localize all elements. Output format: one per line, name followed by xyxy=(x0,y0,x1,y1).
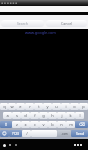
staticText: y xyxy=(46,104,49,109)
staticText: j xyxy=(61,113,63,118)
staticText: w xyxy=(10,104,14,109)
staticText: / xyxy=(26,131,28,136)
staticText: k xyxy=(69,113,72,118)
staticText: l xyxy=(79,113,81,118)
button[interactable] xyxy=(31,130,57,137)
button[interactable]: u xyxy=(52,103,61,110)
button[interactable]: / xyxy=(22,130,31,137)
button[interactable]: y xyxy=(43,103,52,110)
staticText: ?123 xyxy=(12,132,19,136)
staticText: p xyxy=(82,104,85,109)
staticText: v xyxy=(42,122,45,127)
staticText: .com xyxy=(61,132,68,136)
button[interactable]: ⌫ xyxy=(75,121,88,128)
button[interactable]: o xyxy=(70,103,79,110)
button[interactable]: l xyxy=(75,112,84,119)
button[interactable]: c xyxy=(30,121,39,128)
staticText: Cancel xyxy=(61,21,73,26)
staticText: f xyxy=(34,113,36,118)
staticText: u xyxy=(55,104,58,109)
staticText: b xyxy=(51,122,54,127)
staticText: r xyxy=(29,104,31,109)
button[interactable]: z xyxy=(12,121,21,128)
staticText: e xyxy=(19,104,22,109)
staticText: a xyxy=(6,113,9,118)
button[interactable]: ⇧ xyxy=(0,121,12,128)
button[interactable]: g xyxy=(39,112,48,119)
staticText: d xyxy=(24,113,27,118)
button[interactable]: s xyxy=(12,112,21,119)
staticText: c xyxy=(34,122,36,127)
button[interactable]: .com xyxy=(57,130,71,137)
staticText: ▪ ▪ ▪ ▪ ▪ ▪ xyxy=(1,1,18,5)
button[interactable]: k xyxy=(66,112,75,119)
button[interactable]: n xyxy=(57,121,66,128)
staticText: Send xyxy=(76,131,84,136)
button[interactable]: r xyxy=(25,103,34,110)
button[interactable]: j xyxy=(57,112,66,119)
staticText: ☺ xyxy=(2,131,7,136)
staticText: ⌫ xyxy=(79,122,85,127)
button[interactable]: h xyxy=(48,112,57,119)
staticText: g xyxy=(42,113,45,118)
staticText: www.google.com xyxy=(25,30,56,35)
button[interactable]: t xyxy=(34,103,43,110)
button[interactable]: Send xyxy=(71,130,88,137)
staticText: Search xyxy=(17,21,28,26)
staticText: o xyxy=(73,104,76,109)
staticText: h xyxy=(51,113,54,118)
staticText: s xyxy=(16,113,18,118)
staticText: m xyxy=(69,122,73,127)
staticText: x xyxy=(24,122,27,127)
button[interactable]: a xyxy=(3,112,12,119)
staticText: ⇧ xyxy=(4,122,8,127)
staticText: z xyxy=(16,122,18,127)
staticText: q xyxy=(3,104,6,109)
button[interactable]: q xyxy=(0,103,8,110)
staticText: t xyxy=(38,104,40,109)
button[interactable]: m xyxy=(66,121,75,128)
button[interactable]: Search xyxy=(1,20,44,27)
staticText: i xyxy=(65,104,67,109)
button[interactable]: v xyxy=(39,121,48,128)
button[interactable]: Recent apps xyxy=(13,142,19,148)
button[interactable]: x xyxy=(21,121,30,128)
button[interactable]: d xyxy=(21,112,30,119)
button[interactable]: e xyxy=(16,103,25,110)
button[interactable]: f xyxy=(30,112,39,119)
button[interactable]: Back xyxy=(1,142,7,148)
button[interactable]: i xyxy=(61,103,70,110)
button[interactable]: Cancel xyxy=(46,20,87,27)
button[interactable]: w xyxy=(8,103,16,110)
button[interactable]: p xyxy=(79,103,88,110)
staticText: n xyxy=(60,122,63,127)
button[interactable]: b xyxy=(48,121,57,128)
button[interactable]: Home xyxy=(7,142,13,148)
button[interactable]: ☺ xyxy=(0,130,9,137)
button[interactable]: ?123 xyxy=(9,130,22,137)
